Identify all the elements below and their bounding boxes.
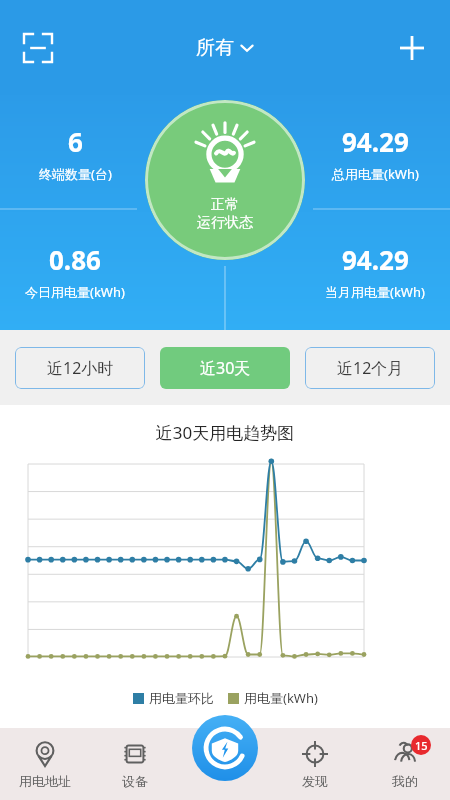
staticText: 94.29 [342,124,409,159]
staticText: 用电量(kWh) [244,689,318,707]
staticText: 当月用电量(kWh) [325,283,425,301]
staticText: 6 [68,124,83,159]
staticText: 15 [415,738,428,753]
button[interactable]: Protect [192,715,258,781]
staticText: 0.86 [49,242,101,277]
staticText: 正常 [211,196,239,214]
staticText: 我的 [392,773,418,789]
button[interactable]: 近12小时 [15,347,145,389]
staticText: 今日用电量(kWh) [25,283,125,301]
staticText: 发现 [302,773,328,789]
staticText: 94.29 [342,242,409,277]
button[interactable]: 设备 [90,728,180,800]
button[interactable]: Scan [16,26,60,70]
button[interactable]: 15 [360,728,450,800]
staticText: 近30天用电趋势图 [0,421,450,444]
button[interactable]: Add [390,26,434,70]
button[interactable]: 所有 [196,36,254,60]
staticText: 用电量环比 [149,690,214,706]
staticText: 总用电量(kWh) [332,165,419,183]
staticText: 近30天 [200,357,251,379]
staticText: 近12小时 [47,357,114,379]
staticText: 用电地址 [19,773,71,789]
staticText: 所有 [196,36,234,60]
staticText: 近12个月 [337,357,404,379]
button[interactable]: 用电地址 [0,728,90,800]
staticText: 终端数量(台) [39,165,112,183]
staticText: 运行状态 [197,214,253,232]
button[interactable]: 近12个月 [305,347,435,389]
staticText: 设备 [122,773,148,789]
button[interactable]: 近30天 [160,347,290,389]
button[interactable]: 正常 [145,100,305,260]
button[interactable]: 发现 [270,728,360,800]
